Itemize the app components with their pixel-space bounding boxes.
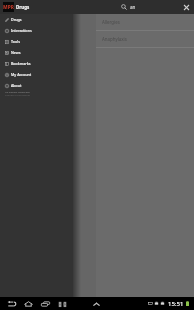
button[interactable]: an	[121, 0, 176, 14]
staticText: Interactions	[11, 28, 32, 33]
button[interactable]: Tools	[0, 36, 73, 47]
staticText: My Account	[11, 72, 32, 77]
staticText: 15:51	[168, 300, 184, 308]
button[interactable]: Home	[20, 297, 37, 310]
button[interactable]: Notifications	[89, 297, 103, 310]
staticText: News	[11, 50, 21, 55]
button[interactable]: Allergies	[96, 14, 194, 31]
staticText: Anaphylaxis	[102, 36, 127, 42]
button[interactable]: MPR	[3, 2, 30, 12]
button[interactable]: News	[0, 47, 73, 58]
button[interactable]: My Account	[0, 69, 73, 80]
staticText: About	[11, 83, 22, 88]
button[interactable]: Recent apps	[37, 297, 54, 310]
staticText: MPR	[3, 4, 14, 11]
staticText: Allergies	[102, 19, 120, 25]
button[interactable]: Close search	[180, 1, 193, 14]
staticText: Connect to the internet	[5, 94, 31, 97]
staticText: an	[130, 4, 136, 10]
staticText: Bookmarks	[11, 61, 31, 66]
button[interactable]: Back	[3, 297, 20, 310]
button[interactable]: About	[0, 80, 73, 91]
button[interactable]: Drugs	[0, 14, 73, 25]
staticText: Tools	[11, 39, 20, 44]
staticText: Drugs	[16, 4, 30, 10]
button[interactable]: Interactions	[0, 25, 73, 36]
button[interactable]: Anaphylaxis	[96, 31, 194, 48]
staticText: No internet connection	[5, 91, 30, 94]
button[interactable]: Bookmarks	[0, 58, 73, 69]
staticText: Drugs	[11, 17, 22, 22]
button[interactable]: Screenshot	[54, 297, 71, 310]
